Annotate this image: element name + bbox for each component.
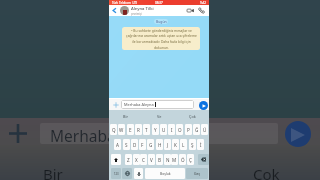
button[interactable]: S [123,139,130,150]
button[interactable]: Shift [111,154,121,165]
button[interactable]: C [140,154,147,165]
staticText: • Bu sohbete gönderdiğiniz mesajlar ve ç… [126,28,197,50]
staticText: G [149,142,153,148]
button[interactable]: Backspace [198,154,209,165]
staticText: D [133,142,137,148]
staticText: R [137,127,140,133]
button[interactable]: Bir [109,110,143,123]
staticText: çevrimiçi [131,12,142,16]
button[interactable]: G [147,139,154,150]
staticText: N [166,157,170,163]
button[interactable]: Merhaba Aleyna [121,100,194,109]
button[interactable]: A [114,139,121,150]
staticText: V [150,157,153,163]
button[interactable]: Send [199,101,208,110]
staticText: S [125,142,128,148]
staticText: K [174,142,177,148]
button[interactable]: L [180,139,187,150]
staticText: T [145,127,148,133]
staticText: Çok [253,164,280,180]
staticText: 123 [114,172,119,176]
staticText: Merhaba Aleyna [124,102,154,107]
staticText: O [178,127,182,133]
staticText: Bir [43,164,63,180]
other: Back [111,7,118,14]
staticText: Boşluk [160,171,171,176]
staticText: F [141,142,144,148]
staticText: B [158,157,161,163]
staticText: Türk Telekom LTE [112,1,138,5]
staticText: Ş [191,142,194,148]
button[interactable]: Ve [143,110,176,123]
staticText: Bugün [156,19,167,24]
button[interactable]: Z [125,154,132,165]
staticText: Çok [189,114,196,119]
button[interactable]: M [171,154,178,165]
staticText: 08:37 [155,1,163,5]
button[interactable]: I [168,124,175,135]
button[interactable]: • Bu sohbete gönderdiğiniz mesajlar ve ç… [122,27,200,50]
button[interactable]: K [172,139,179,150]
staticText: W [119,127,124,133]
staticText: U [162,127,166,133]
button[interactable]: J [164,139,171,150]
staticText: L [182,142,185,148]
staticText: X [135,157,138,163]
staticText: A [116,142,119,148]
staticText: H [158,142,162,148]
staticText: Bir [123,114,129,119]
button[interactable]: Çok [176,110,209,123]
button[interactable]: Ü [201,124,208,135]
button[interactable]: Ş [189,139,196,150]
staticText: Aleyna Tilki [131,6,154,12]
staticText: Ü [203,127,207,133]
other: Voice call [198,7,205,14]
staticText: Z [127,157,130,163]
staticText: İ [200,142,202,148]
button[interactable]: Emoji [122,168,132,179]
button[interactable]: N [164,154,171,165]
button[interactable]: X [133,154,140,165]
button[interactable]: Ç [187,154,194,165]
button[interactable]: İ [197,139,204,150]
button[interactable]: Bugün [154,19,168,24]
staticText: %42 [200,1,206,5]
staticText: Geç [194,171,201,176]
staticText: P [187,127,190,133]
button[interactable]: Attach [113,102,119,108]
staticText: Y [154,127,157,133]
button[interactable]: Q [110,124,117,135]
button[interactable]: R [135,124,142,135]
button[interactable]: P [185,124,192,135]
staticText: M [172,157,177,163]
staticText: Merhaba [50,125,116,146]
button[interactable]: Boşluk [145,168,185,179]
button[interactable]: Geç [186,168,208,179]
button[interactable]: B [156,154,163,165]
other: Video call [187,7,194,14]
staticText: J [167,142,169,148]
button[interactable]: V [148,154,155,165]
button[interactable]: Ö [179,154,186,165]
staticText: Ğ [195,127,199,133]
button[interactable]: F [139,139,146,150]
button[interactable]: 123 [111,168,121,179]
button[interactable]: U [160,124,167,135]
button[interactable]: Y [152,124,159,135]
staticText: C [142,157,145,163]
button[interactable]: O [176,124,183,135]
staticText: E [129,127,132,133]
button[interactable]: T [143,124,150,135]
staticText: Ö [181,157,185,163]
button[interactable]: W [118,124,125,135]
button[interactable]: Dictate [134,168,143,179]
button[interactable]: D [131,139,138,150]
button[interactable]: E [127,124,134,135]
staticText: Ve [157,114,162,119]
button[interactable]: Ğ [193,124,200,135]
staticText: Ç [189,157,192,163]
button[interactable]: Back [109,5,209,16]
staticText: Q [112,127,116,133]
button[interactable]: H [156,139,163,150]
staticText: I [171,127,173,133]
